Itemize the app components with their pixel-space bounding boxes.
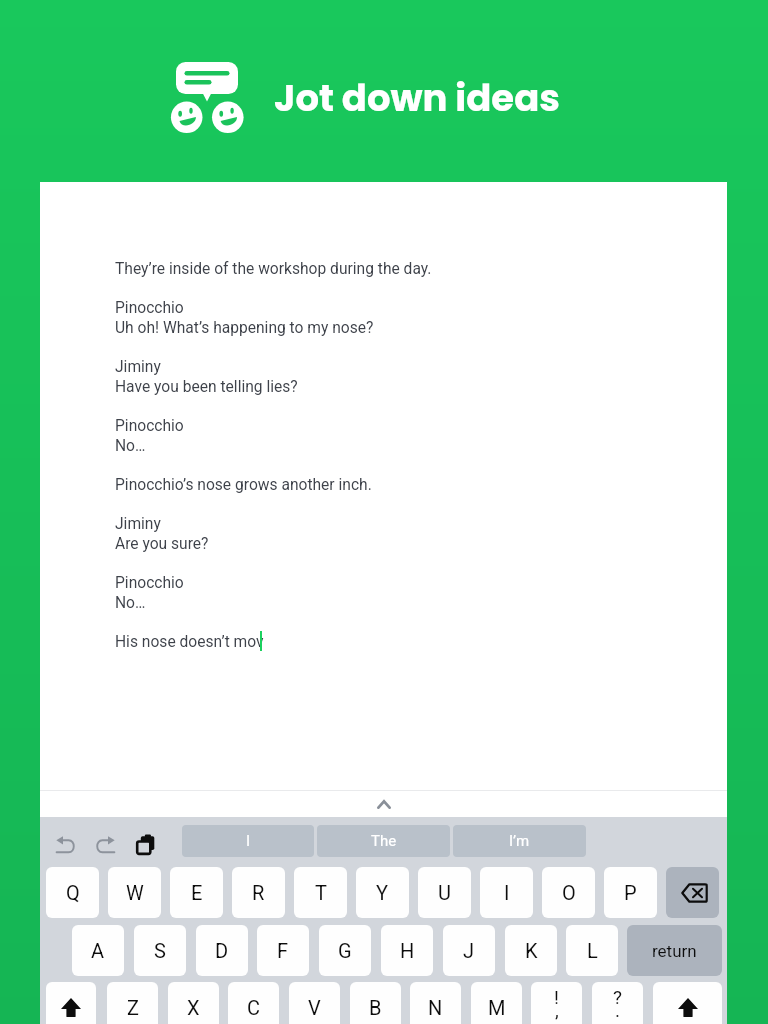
staticText: No… — [115, 594, 146, 612]
button[interactable]: P — [604, 867, 657, 918]
button[interactable]: V — [289, 982, 340, 1024]
staticText: , — [555, 999, 559, 1021]
staticText: Pinocchio’s nose grows another inch. — [115, 476, 372, 494]
staticText: U — [438, 881, 451, 904]
staticText: No… — [115, 437, 146, 455]
staticText: S — [154, 939, 166, 962]
staticText: B — [369, 996, 382, 1019]
button[interactable]: N — [410, 982, 461, 1024]
staticText: Q — [66, 881, 80, 904]
staticText: D — [215, 939, 229, 962]
button[interactable]: D — [196, 925, 248, 976]
button[interactable]: Z — [107, 982, 158, 1024]
staticText: F — [277, 939, 289, 962]
button[interactable]: A — [72, 925, 124, 976]
staticText: I’m — [509, 832, 530, 850]
staticText: K — [525, 939, 538, 962]
button[interactable]: ! — [531, 982, 582, 1024]
staticText: P — [624, 881, 637, 904]
button[interactable]: C — [228, 982, 279, 1024]
button[interactable]: M — [471, 982, 522, 1024]
staticText: J — [463, 939, 475, 962]
staticText: ! — [554, 986, 559, 1008]
button[interactable]: L — [566, 925, 618, 976]
staticText: Jiminy — [115, 515, 161, 533]
staticText: R — [252, 881, 265, 904]
button[interactable]: J — [443, 925, 495, 976]
button[interactable]: ? — [592, 982, 643, 1024]
staticText: Z — [127, 996, 139, 1019]
staticText: N — [428, 996, 443, 1019]
button[interactable]: I’m — [453, 825, 586, 857]
staticText: Pinocchio — [115, 574, 184, 592]
staticText: G — [338, 939, 352, 962]
staticText: C — [247, 996, 261, 1019]
staticText: His nose doesn’t mov — [115, 633, 264, 651]
button[interactable]: U — [418, 867, 471, 918]
button[interactable]: H — [381, 925, 433, 976]
staticText: I — [246, 832, 251, 850]
staticText: Pinocchio — [115, 417, 184, 435]
staticText: The — [371, 832, 397, 850]
button[interactable]: Shift — [653, 982, 722, 1024]
button[interactable]: E — [170, 867, 223, 918]
button[interactable]: I — [182, 825, 314, 857]
button[interactable]: Redo — [85, 831, 124, 859]
staticText: H — [400, 939, 415, 962]
staticText: They’re inside of the workshop during th… — [115, 260, 432, 278]
button[interactable]: Backspace — [666, 867, 719, 918]
staticText: Jot down ideas — [274, 72, 560, 124]
staticText: I — [504, 881, 510, 904]
button[interactable]: R — [232, 867, 285, 918]
button[interactable]: T — [294, 867, 347, 918]
button[interactable]: Undo — [46, 831, 85, 859]
button[interactable]: S — [134, 925, 186, 976]
button[interactable]: Shift — [46, 982, 96, 1024]
button[interactable]: O — [542, 867, 595, 918]
button[interactable]: B — [350, 982, 401, 1024]
button[interactable]: X — [168, 982, 219, 1024]
staticText: O — [562, 881, 576, 904]
staticText: Jiminy — [115, 358, 161, 376]
staticText: Have you been telling lies? — [115, 378, 298, 396]
button[interactable]: F — [257, 925, 309, 976]
staticText: V — [308, 996, 321, 1019]
staticText: X — [187, 996, 200, 1019]
staticText: Pinocchio — [115, 299, 184, 317]
button[interactable]: Hide keyboard — [344, 791, 424, 817]
staticText: W — [126, 881, 144, 904]
staticText: Y — [376, 881, 389, 904]
staticText: T — [315, 881, 327, 904]
button[interactable]: Q — [46, 867, 99, 918]
staticText: ? — [613, 986, 622, 1008]
staticText: M — [488, 996, 506, 1019]
staticText: E — [191, 881, 203, 904]
staticText: Uh oh! What’s happening to my nose? — [115, 319, 374, 337]
button[interactable]: return — [627, 925, 722, 976]
staticText: L — [587, 939, 598, 962]
staticText: . — [615, 999, 621, 1021]
staticText: A — [91, 939, 105, 962]
button[interactable]: Paste — [127, 830, 167, 860]
button[interactable]: The — [317, 825, 450, 857]
button[interactable]: Y — [356, 867, 409, 918]
button[interactable]: K — [505, 925, 557, 976]
button[interactable]: G — [319, 925, 371, 976]
button[interactable]: W — [108, 867, 161, 918]
button[interactable]: I — [480, 867, 533, 918]
staticText: return — [652, 941, 697, 961]
staticText: Are you sure? — [115, 535, 209, 553]
